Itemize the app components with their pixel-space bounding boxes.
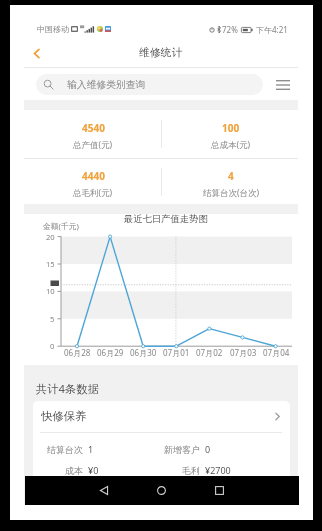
staticText: 06月28	[64, 347, 91, 358]
staticText: 共计4条数据	[36, 381, 99, 396]
staticText: 成本	[65, 465, 83, 476]
staticText: 10	[46, 286, 55, 296]
button[interactable]: 快修保养	[33, 401, 290, 431]
staticText: 06月30	[130, 347, 157, 358]
staticText: 07月01	[163, 347, 190, 358]
button[interactable]: 输入维修类别查询	[36, 74, 263, 95]
staticText: 07月04	[263, 347, 290, 358]
staticText: 72%	[222, 24, 238, 35]
staticText: 07月03	[230, 347, 257, 358]
staticText: ¥2700	[205, 464, 231, 476]
staticText: 15	[46, 259, 55, 269]
button[interactable]: Home	[149, 476, 173, 505]
staticText: 06月29	[97, 347, 124, 358]
staticText: 最近七日产值走势图	[124, 213, 208, 225]
staticText: 4	[228, 169, 234, 183]
staticText: 1	[88, 443, 94, 455]
staticText: 维修统计	[139, 46, 183, 60]
staticText: 总成本(元)	[211, 139, 251, 151]
staticText: ¥0	[88, 464, 99, 476]
staticText: 金额(千元)	[43, 221, 79, 232]
staticText: 4440	[82, 169, 105, 183]
button[interactable]: Back	[25, 42, 47, 64]
staticText: 结算台次	[47, 444, 83, 455]
staticText: 输入维修类别查询	[67, 79, 146, 91]
staticText: 4540	[82, 121, 105, 135]
staticText: 100	[222, 121, 240, 135]
staticText: 0	[50, 341, 55, 351]
button[interactable]: Recents	[207, 476, 231, 505]
button[interactable]: Back	[92, 476, 116, 505]
staticText: 0	[205, 443, 211, 455]
staticText: 中国移动	[37, 24, 69, 34]
button[interactable]: Menu	[271, 72, 295, 96]
staticText: 总产值(元)	[73, 139, 113, 151]
staticText: 毛利	[182, 465, 200, 476]
staticText: 下午4:21	[256, 24, 288, 35]
staticText: 07月02	[196, 347, 223, 358]
staticText: 总毛利(元)	[73, 187, 113, 199]
staticText: 结算台次(台次)	[203, 187, 260, 199]
staticText: 20	[46, 232, 55, 242]
staticText: 新增客户	[164, 444, 200, 455]
staticText: 5	[50, 314, 55, 324]
staticText: 快修保养	[41, 409, 87, 423]
